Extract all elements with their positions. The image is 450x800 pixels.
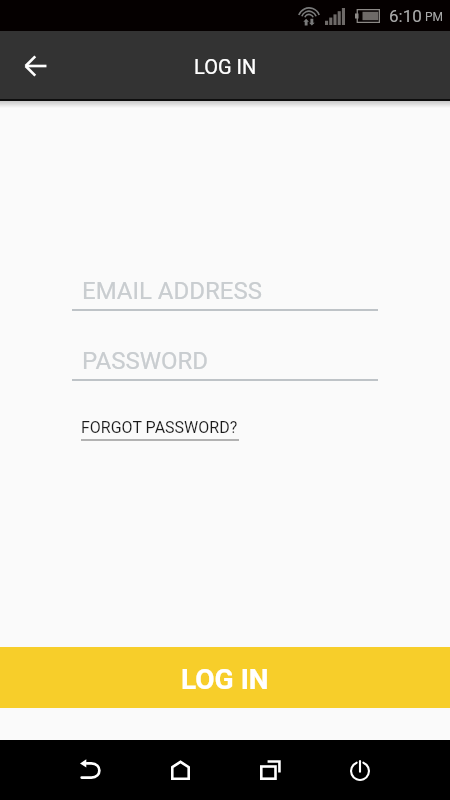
staticText: PASSWORD	[82, 347, 209, 375]
staticText: LOG IN	[181, 663, 269, 696]
button[interactable]: Power	[315, 740, 405, 800]
button[interactable]: PASSWORD	[72, 339, 378, 381]
staticText: 6:10	[389, 6, 422, 26]
button[interactable]: Recents	[225, 740, 315, 800]
button[interactable]: Home	[135, 740, 225, 800]
button[interactable]: LOG IN	[0, 647, 450, 708]
button[interactable]: Back	[12, 42, 58, 88]
button[interactable]: FORGOT PASSWORD?	[81, 411, 239, 441]
staticText: EMAIL ADDRESS	[82, 277, 262, 305]
staticText: PM	[425, 10, 444, 24]
button[interactable]: Back	[45, 740, 135, 800]
staticText: LOG IN	[194, 55, 257, 78]
button[interactable]: EMAIL ADDRESS	[72, 269, 378, 311]
staticText: FORGOT PASSWORD?	[81, 418, 238, 437]
